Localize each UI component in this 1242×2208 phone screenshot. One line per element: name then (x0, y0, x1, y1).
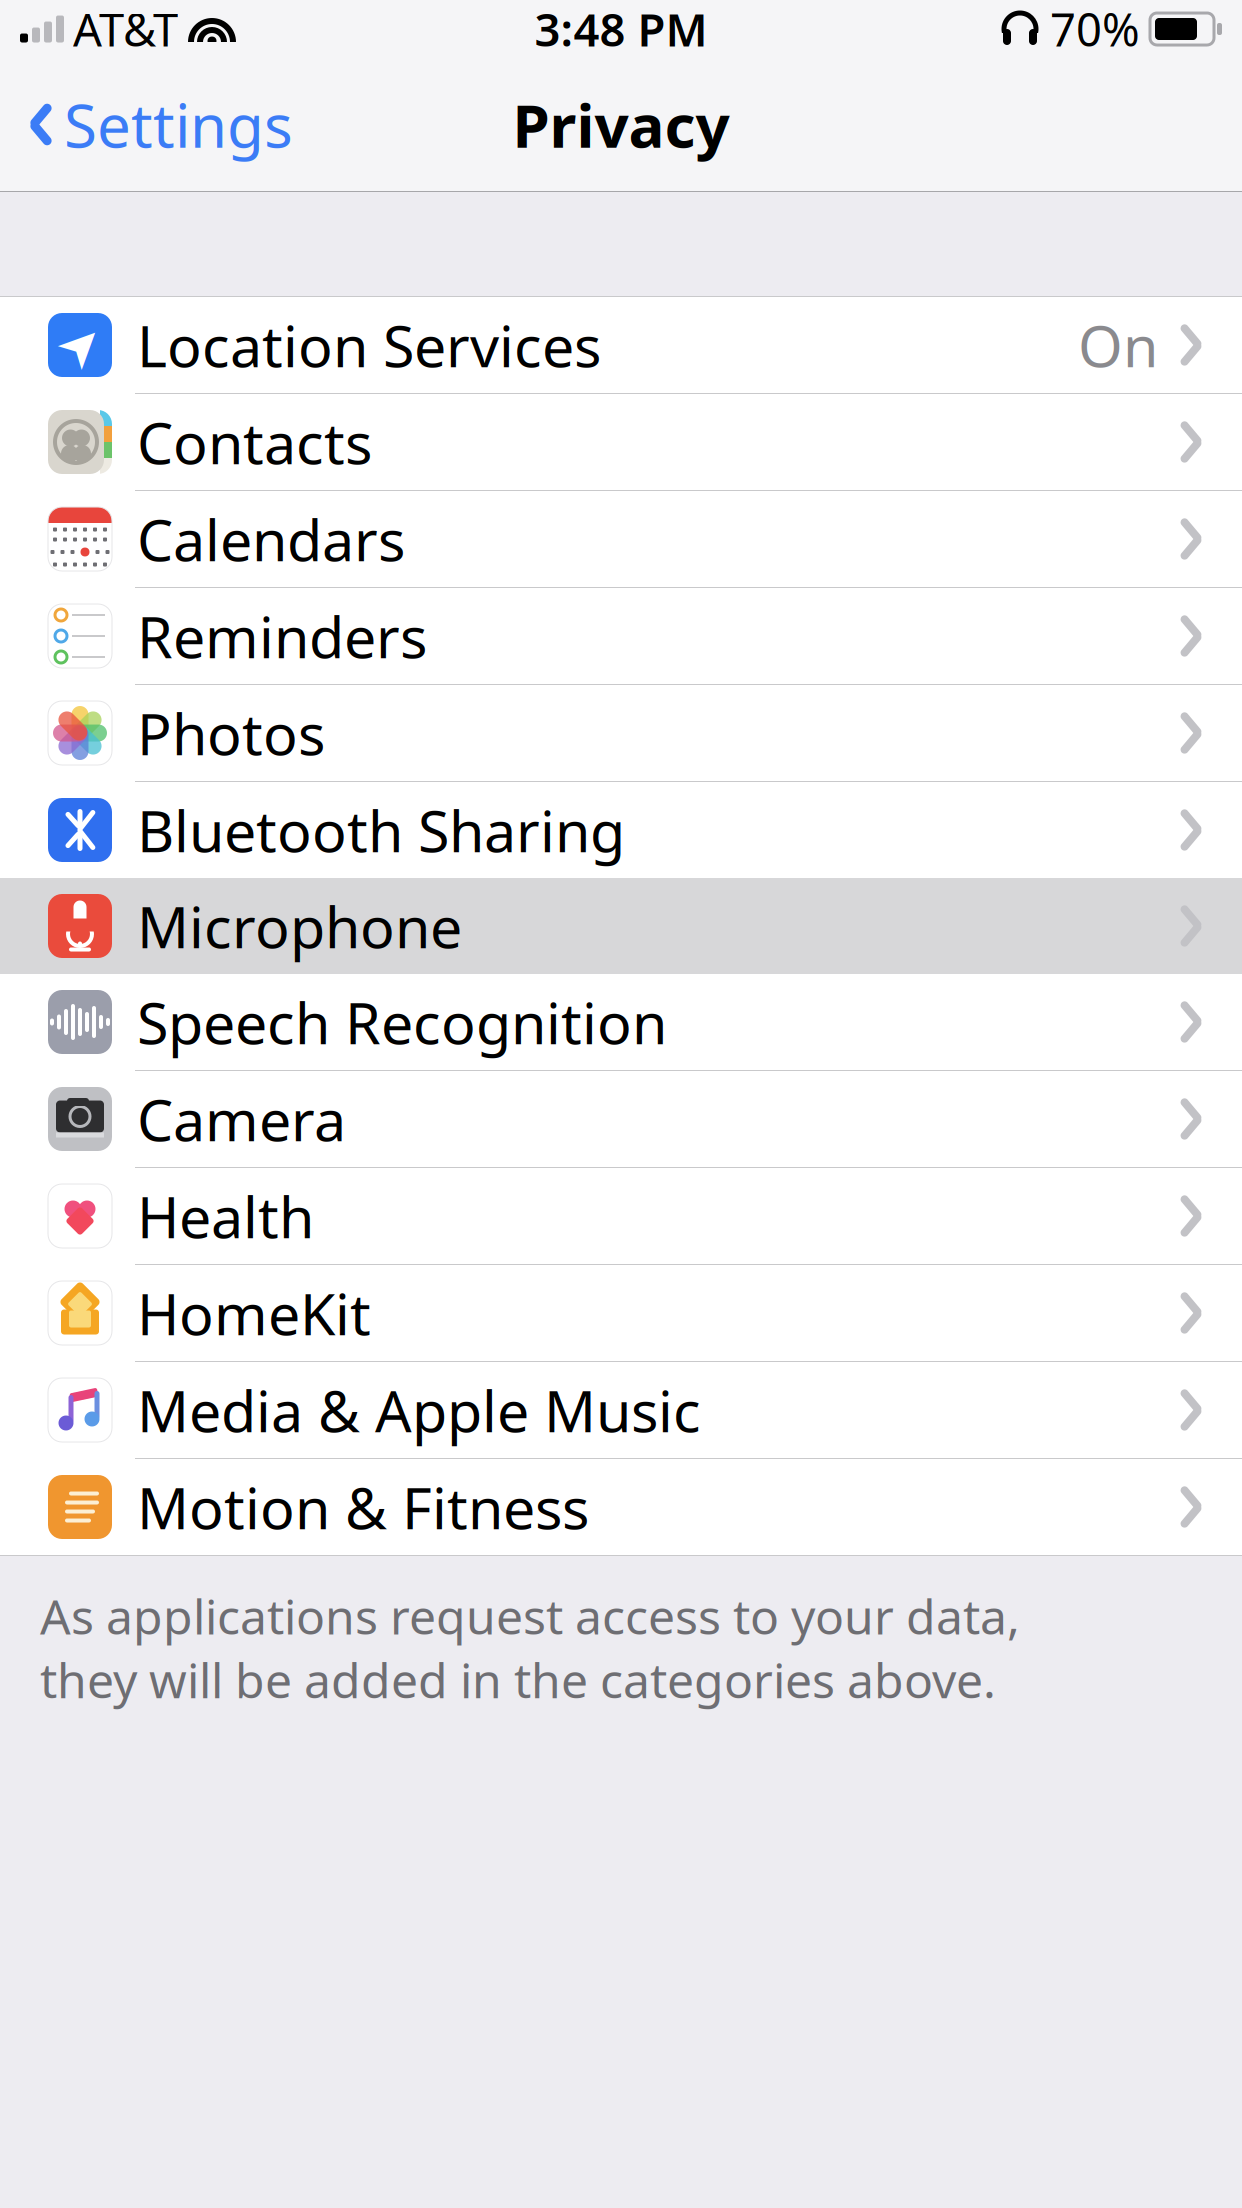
staticText: Microphone (137, 888, 462, 964)
staticText: Health (137, 1178, 314, 1254)
button[interactable]: Contacts (0, 394, 1242, 490)
staticText: Speech Recognition (137, 984, 667, 1060)
staticText: HomeKit (137, 1275, 371, 1351)
staticText: Media & Apple Music (137, 1372, 701, 1448)
button[interactable]: Reminders (0, 588, 1242, 684)
staticText: Settings (64, 85, 293, 164)
staticText: Location Services (137, 307, 601, 383)
staticText: Contacts (137, 404, 372, 480)
button[interactable]: Motion & Fitness (0, 1459, 1242, 1555)
staticText: As applications request access to your d… (40, 1584, 1020, 1711)
button[interactable]: Speech Recognition (0, 974, 1242, 1070)
staticText: AT&T (73, 0, 178, 59)
staticText: Reminders (137, 598, 427, 674)
button[interactable]: Media & Apple Music (0, 1362, 1242, 1458)
staticText: 3:48 PM (534, 0, 707, 59)
button[interactable]: Settings (0, 71, 309, 178)
button[interactable]: Microphone (0, 878, 1242, 974)
staticText: ➤ (57, 315, 102, 375)
button[interactable]: ➤ (0, 297, 1242, 393)
staticText: Bluetooth Sharing (137, 792, 625, 868)
button[interactable]: Bluetooth Sharing (0, 782, 1242, 878)
button[interactable]: Calendars (0, 491, 1242, 587)
button[interactable]: Camera (0, 1071, 1242, 1167)
staticText: 70% (1050, 0, 1140, 59)
button[interactable]: Photos (0, 685, 1242, 781)
button[interactable]: Health (0, 1168, 1242, 1264)
staticText: Privacy (512, 85, 729, 164)
staticText: Camera (137, 1081, 346, 1157)
staticText: Photos (137, 695, 325, 771)
button[interactable]: HomeKit (0, 1265, 1242, 1361)
staticText: On (1078, 307, 1158, 383)
staticText: Calendars (137, 501, 405, 577)
staticText: Motion & Fitness (137, 1469, 589, 1545)
